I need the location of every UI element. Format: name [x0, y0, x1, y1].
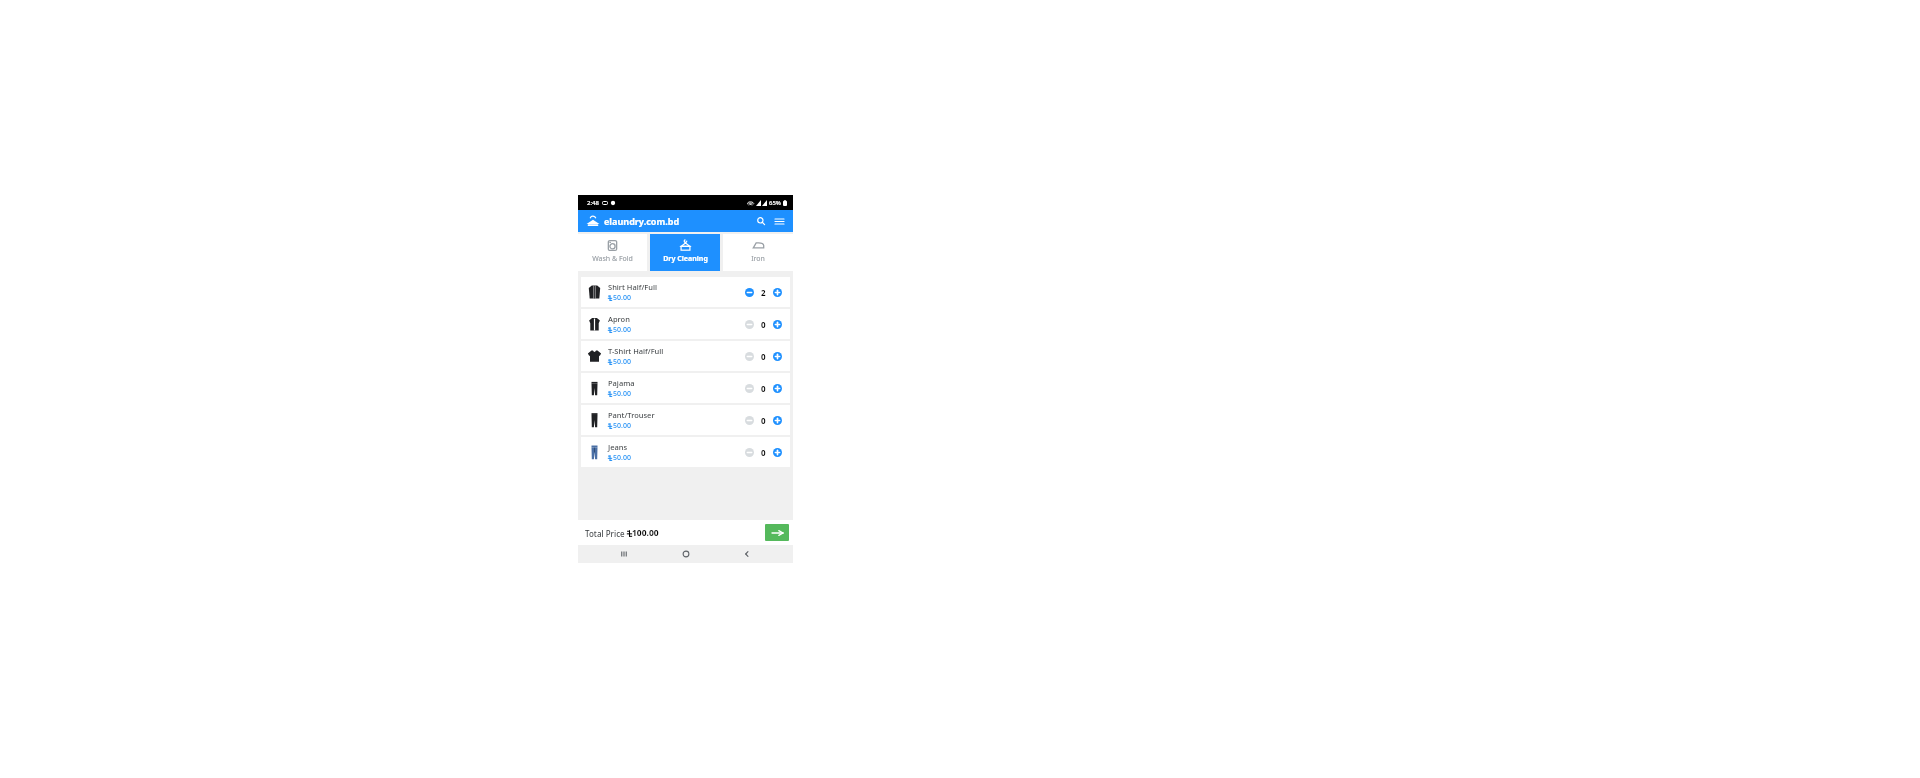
staticText: 2 [761, 287, 766, 298]
staticText: Dry Cleaning [663, 254, 708, 264]
staticText: 100.00 [632, 527, 659, 539]
button[interactable]: Decrease T-Shirt Half/Full [742, 349, 756, 363]
staticText: 0 [761, 415, 766, 426]
staticText: 2:48 [587, 199, 599, 207]
button[interactable]: Pajama [581, 373, 790, 403]
staticText: 50.00 [613, 357, 631, 367]
button[interactable]: Home [671, 545, 701, 563]
staticText: 50.00 [613, 389, 631, 399]
staticText: 65% [769, 199, 781, 207]
staticText: Total Price [585, 528, 627, 539]
button[interactable]: Search [753, 213, 769, 229]
staticText: Apron [608, 314, 630, 324]
button[interactable]: Iron [723, 234, 793, 271]
staticText: T-Shirt Half/Full [608, 346, 664, 356]
staticText: Shirt Half/Full [608, 282, 658, 292]
staticText: 50.00 [613, 325, 631, 335]
button[interactable]: Dry Cleaning [650, 234, 720, 271]
staticText: elaundry.com.bd [604, 215, 680, 227]
staticText: 50.00 [613, 293, 631, 303]
staticText: 0 [761, 351, 766, 362]
button[interactable]: Increase Shirt Half/Full [770, 285, 784, 299]
staticText: Pant/Trouser [608, 410, 655, 420]
button[interactable]: Pant/Trouser [581, 405, 790, 435]
staticText: 0 [761, 447, 766, 458]
button[interactable]: Jeans [581, 437, 790, 467]
button[interactable]: Decrease Shirt Half/Full [742, 285, 756, 299]
button[interactable]: Increase T-Shirt Half/Full [770, 349, 784, 363]
button[interactable]: Decrease Pant/Trouser [742, 413, 756, 427]
staticText: 0 [761, 383, 766, 394]
button[interactable]: Apron [581, 309, 790, 339]
button[interactable]: Recent apps [609, 545, 639, 563]
button[interactable]: Shirt Half/Full [581, 277, 790, 307]
button[interactable]: Increase Pajama [770, 381, 784, 395]
staticText: Wash & Fold [592, 254, 633, 264]
button[interactable]: Increase Jeans [770, 445, 784, 459]
button[interactable]: Decrease Jeans [742, 445, 756, 459]
button[interactable]: Back [732, 545, 762, 563]
staticText: 50.00 [613, 453, 631, 463]
button[interactable]: Menu [771, 213, 787, 229]
staticText: Iron [751, 254, 765, 264]
button[interactable]: Increase Apron [770, 317, 784, 331]
staticText: Pajama [608, 378, 635, 388]
button[interactable]: Decrease Pajama [742, 381, 756, 395]
staticText: 0 [761, 319, 766, 330]
staticText: 50.00 [613, 421, 631, 431]
button[interactable]: T-Shirt Half/Full [581, 341, 790, 371]
button[interactable]: Wash & Fold [578, 234, 647, 271]
button[interactable]: Decrease Apron [742, 317, 756, 331]
button[interactable]: Increase Pant/Trouser [770, 413, 784, 427]
staticText: Jeans [608, 442, 628, 452]
button[interactable]: Proceed [765, 524, 789, 541]
